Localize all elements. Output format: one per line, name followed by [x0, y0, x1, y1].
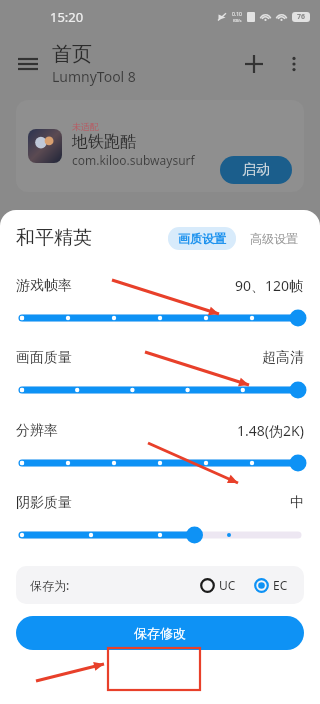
- staticText: 画面质量: [16, 349, 72, 367]
- staticText: 15:20: [50, 8, 84, 26]
- staticText: 1.48(伪2K): [237, 421, 304, 440]
- button[interactable]: More options: [276, 46, 312, 82]
- staticText: 阴影质量: [16, 494, 72, 512]
- button[interactable]: 启动: [220, 156, 292, 184]
- staticText: com.kiloo.subwaysurf: [72, 152, 195, 168]
- staticText: 90、120帧: [235, 276, 304, 295]
- staticText: 游戏帧率: [16, 277, 72, 295]
- staticText: 中: [290, 494, 304, 512]
- staticText: 保存修改: [134, 625, 186, 641]
- button[interactable]: Menu: [8, 44, 48, 84]
- staticText: 超高清: [262, 349, 304, 367]
- staticText: 76: [297, 12, 306, 22]
- staticText: LumnyTool 8: [52, 67, 136, 86]
- button[interactable]: [16, 381, 304, 399]
- staticText: 高级设置: [250, 231, 298, 246]
- staticText: 画质设置: [178, 231, 226, 246]
- button[interactable]: 画质设置: [168, 227, 236, 250]
- staticText: KB/s: [233, 18, 242, 23]
- staticText: 启动: [242, 161, 270, 179]
- button[interactable]: [16, 309, 304, 327]
- staticText: 0.10: [232, 11, 242, 18]
- staticText: 分辨率: [16, 422, 58, 440]
- button[interactable]: Add: [234, 44, 274, 84]
- staticText: 和平精英: [16, 226, 92, 250]
- staticText: 首页: [52, 42, 92, 67]
- button[interactable]: [16, 454, 304, 472]
- button[interactable]: EC: [252, 577, 290, 593]
- button[interactable]: 保存修改: [16, 616, 304, 650]
- staticText: EC: [273, 577, 288, 593]
- staticText: 保存为:: [30, 577, 70, 593]
- staticText: UC: [219, 577, 236, 593]
- button[interactable]: [16, 526, 304, 544]
- button[interactable]: 高级设置: [244, 227, 304, 250]
- button[interactable]: UC: [198, 577, 238, 593]
- button[interactable]: 未适配: [16, 100, 304, 192]
- staticText: 地铁跑酷: [72, 132, 136, 152]
- staticText: 未适配: [72, 121, 99, 132]
